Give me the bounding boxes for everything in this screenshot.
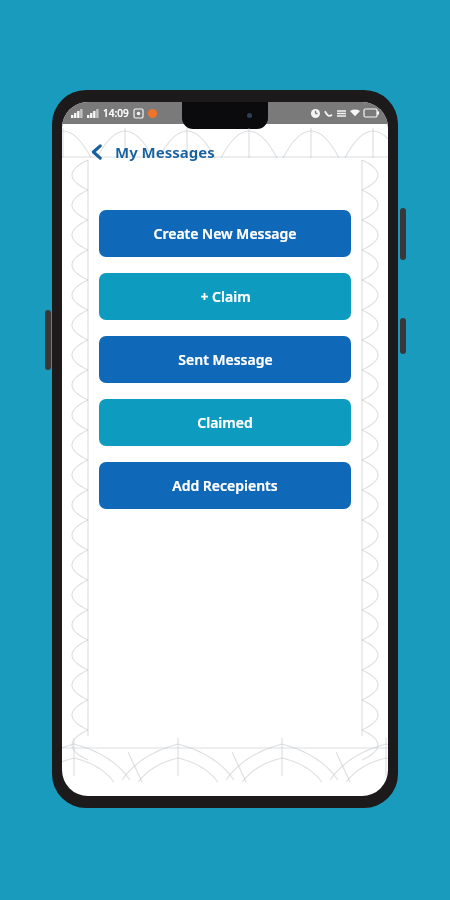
other: Back <box>88 143 106 161</box>
staticText: My Messages <box>115 142 215 162</box>
button[interactable]: Sent Message <box>99 336 351 383</box>
staticText: 14:09 <box>103 106 129 120</box>
staticText: + Claim <box>200 287 251 306</box>
button[interactable]: + Claim <box>99 273 351 320</box>
button[interactable]: Create New Message <box>99 210 351 257</box>
staticText: Add Recepients <box>172 476 278 495</box>
button[interactable]: Back <box>62 124 388 180</box>
staticText: Create New Message <box>153 224 297 243</box>
button[interactable]: Claimed <box>99 399 351 446</box>
staticText: Sent Message <box>178 350 273 369</box>
staticText: Claimed <box>197 413 253 432</box>
button[interactable]: Add Recepients <box>99 462 351 509</box>
